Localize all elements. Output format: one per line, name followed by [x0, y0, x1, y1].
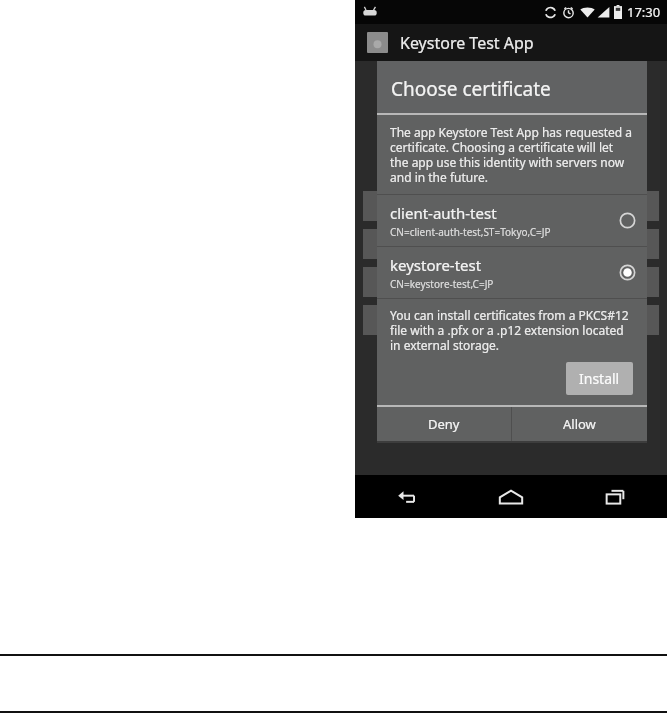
staticText: CN=keystore-test,C=JP [390, 277, 494, 291]
staticText: The app Keystore Test App has requested … [390, 124, 634, 185]
staticText: keystore-test [390, 255, 482, 275]
button[interactable]: Deny [377, 407, 511, 441]
staticText: 17:30 [627, 3, 661, 21]
button[interactable]: client-auth-test [377, 195, 647, 246]
staticText: Allow [563, 415, 596, 433]
button[interactable]: Back [355, 475, 459, 518]
staticText: client-auth-test [390, 203, 497, 223]
staticText: CN=client-auth-test,ST=Tokyo,C=JP [390, 225, 551, 239]
button[interactable]: keystore-test [377, 247, 647, 298]
button[interactable]: Allow [512, 407, 647, 441]
staticText: Choose certificate [391, 76, 551, 102]
staticText: You can install certificates from a PKCS… [390, 307, 634, 353]
staticText: Keystore Test App [400, 32, 534, 54]
button[interactable]: Recent apps [563, 475, 667, 518]
staticText: Install [579, 369, 620, 388]
staticText: Deny [428, 415, 460, 433]
button[interactable]: Home [459, 475, 563, 518]
button[interactable]: Install [566, 362, 633, 395]
